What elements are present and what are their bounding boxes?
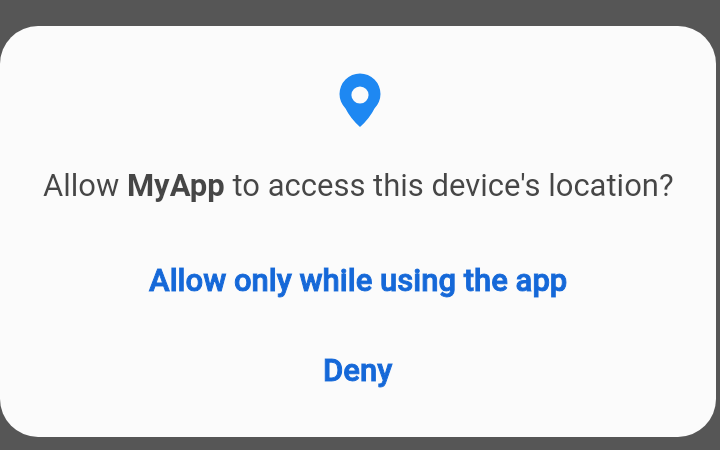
button[interactable]: Allow only while using the app [133,256,584,304]
staticText: Deny [323,352,393,388]
button[interactable]: Deny [307,346,409,394]
staticText: Allow only while using the app [149,262,568,298]
staticText: Deny [323,352,393,388]
staticText: Allow only while using the app [149,262,568,298]
staticText: Allow MyApp to access this device's loca… [43,167,674,203]
